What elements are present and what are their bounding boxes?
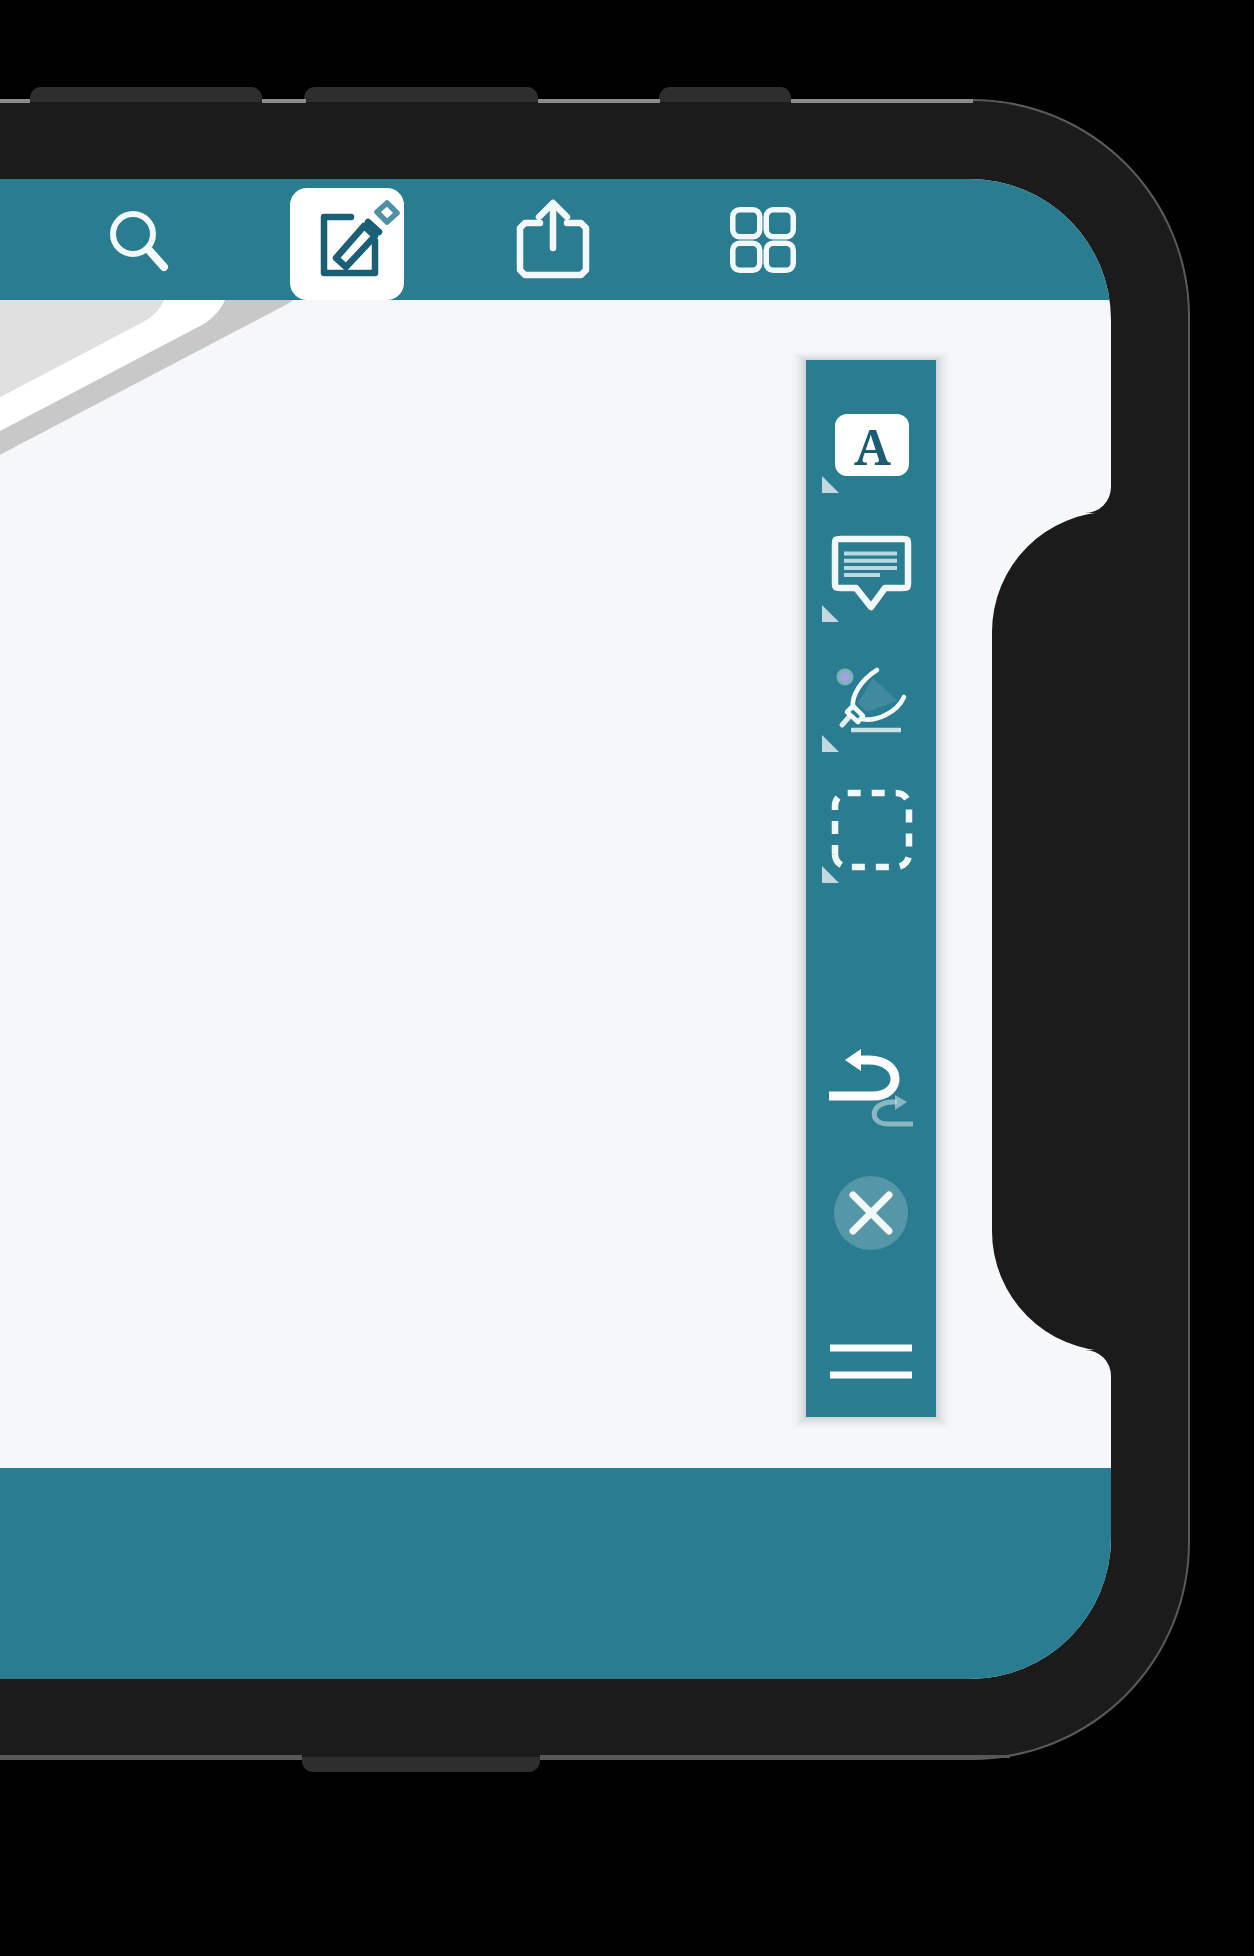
button[interactable]: Undo: [812, 1030, 932, 1140]
button[interactable]: Close toolbar: [820, 1165, 920, 1265]
button[interactable]: Select area tool: [812, 775, 932, 885]
button[interactable]: Move toolbar: [812, 1320, 932, 1400]
button[interactable]: Text tool: [812, 395, 932, 505]
button[interactable]: Search: [72, 180, 192, 300]
staticText: A: [854, 413, 891, 475]
button[interactable]: Comment tool: [812, 525, 932, 635]
button[interactable]: Compose: [290, 180, 405, 300]
button[interactable]: Share: [494, 180, 614, 300]
button[interactable]: Grid view: [705, 180, 820, 300]
button[interactable]: Highlight tool: [812, 650, 932, 760]
